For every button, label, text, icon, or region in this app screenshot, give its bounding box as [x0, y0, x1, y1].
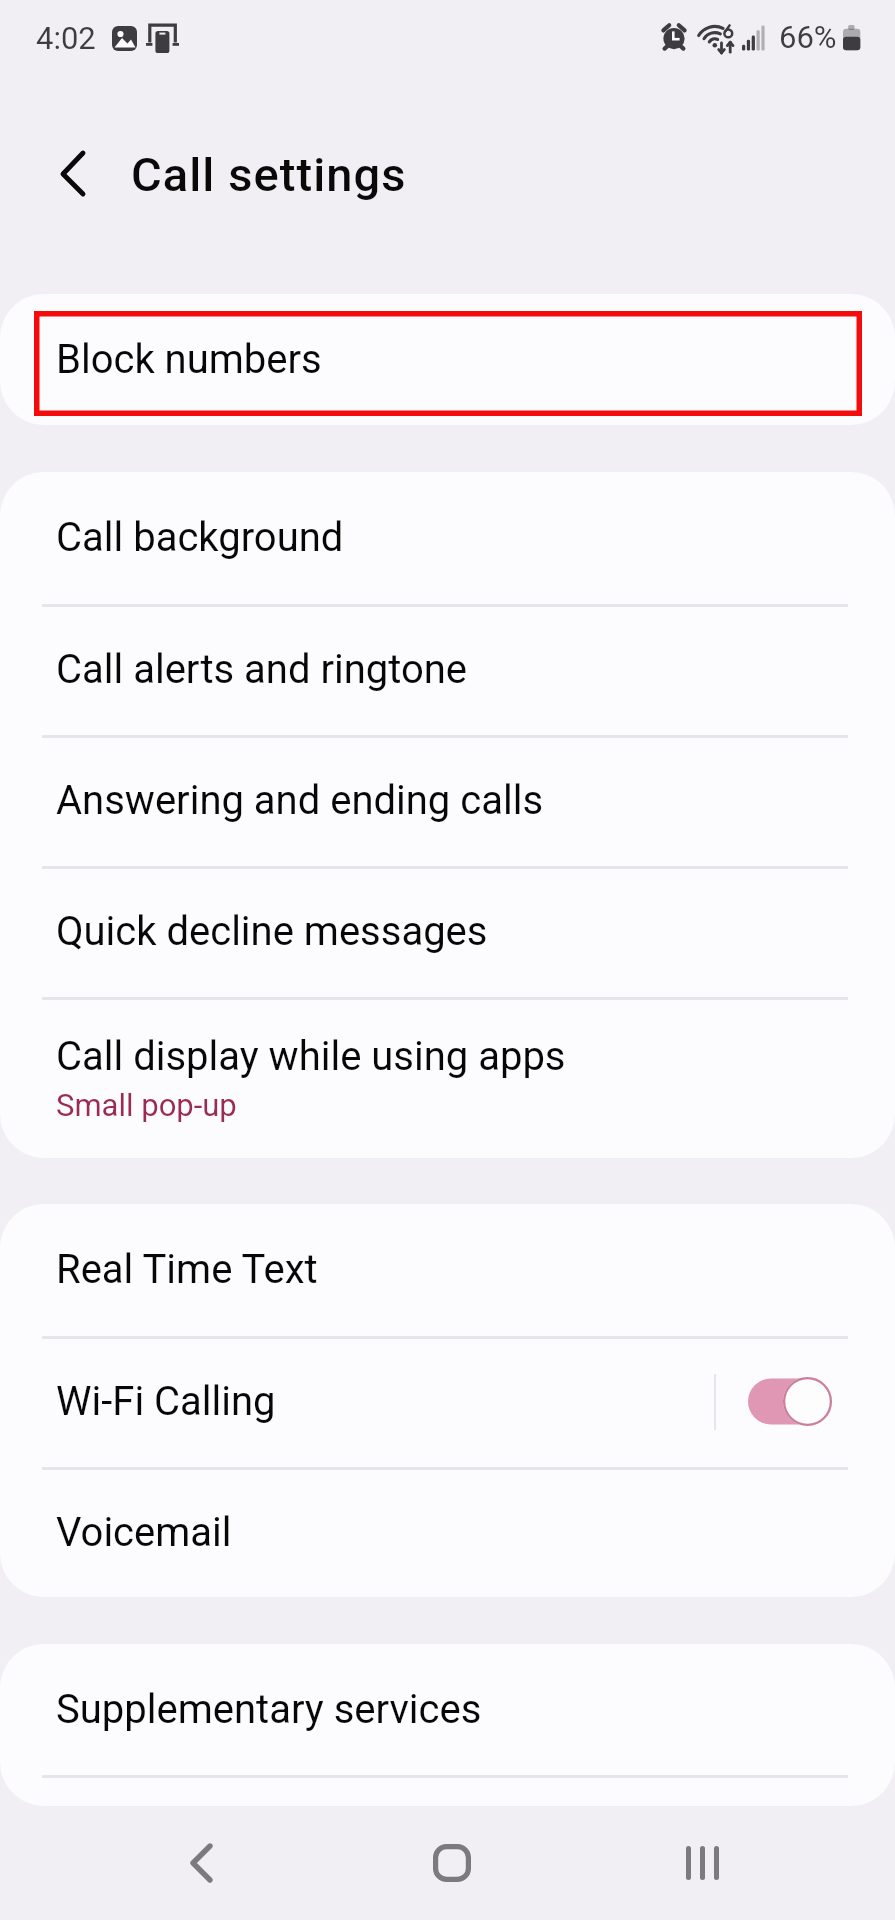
staticText: Call display while using apps [56, 1033, 566, 1080]
button[interactable]: Navigate up [28, 129, 118, 219]
button[interactable]: Recent apps [577, 1806, 827, 1920]
button[interactable]: Block numbers [0, 294, 895, 425]
button[interactable]: Answering and ending calls [0, 735, 895, 866]
button[interactable]: Back [78, 1806, 327, 1920]
button[interactable]: Quick decline messages [0, 866, 895, 997]
staticText: Call settings [131, 147, 407, 202]
staticText: Call alerts and ringtone [56, 646, 468, 693]
button[interactable]: Call display while using apps [0, 997, 895, 1158]
button[interactable]: Real Time Text [0, 1204, 895, 1335]
button[interactable]: Wi-Fi Calling [0, 1336, 895, 1467]
staticText: 4:02 [36, 20, 96, 56]
staticText: Supplementary services [56, 1686, 482, 1733]
button[interactable]: Call background [0, 472, 895, 603]
button[interactable]: Wi-Fi Calling toggle [716, 1336, 895, 1467]
staticText: Real Time Text [56, 1246, 318, 1293]
staticText: Call background [56, 514, 344, 561]
staticText: Voicemail [56, 1509, 232, 1556]
staticText: Small pop-up [56, 1087, 237, 1123]
staticText: Answering and ending calls [56, 777, 544, 824]
button[interactable]: Call alerts and ringtone [0, 604, 895, 735]
button[interactable]: Voicemail [0, 1467, 895, 1597]
staticText: Wi-Fi Calling [56, 1378, 276, 1425]
staticText: Block numbers [56, 336, 322, 383]
staticText: 66% [779, 19, 837, 55]
button[interactable]: Home [327, 1806, 577, 1920]
staticText: Quick decline messages [56, 908, 488, 955]
button[interactable]: Supplementary services [0, 1644, 895, 1775]
